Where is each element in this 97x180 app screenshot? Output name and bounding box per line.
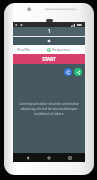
button[interactable]: Recent apps: [64, 153, 76, 162]
staticText: adipiscing elit sed do eiusmod tempor: [20, 107, 78, 111]
staticText: START: [42, 56, 56, 62]
button[interactable]: Shuffle: [17, 45, 47, 54]
staticText: 1: [48, 28, 51, 35]
button[interactable]: 1: [13, 27, 85, 36]
staticText: Shuffle: [17, 47, 31, 52]
button[interactable]: [13, 37, 85, 45]
staticText: Lorem ipsum dolor sit amet consectetur: [19, 102, 79, 106]
button[interactable]: Home: [43, 153, 55, 162]
button[interactable]: Back: [22, 153, 34, 162]
button[interactable]: Share: [74, 68, 82, 76]
staticText: Sequence: [52, 47, 71, 52]
staticText: incididunt ut labore: [34, 112, 64, 116]
button[interactable]: Sequence: [47, 45, 81, 54]
button[interactable]: Refresh: [64, 68, 72, 76]
button[interactable]: START: [13, 54, 85, 64]
